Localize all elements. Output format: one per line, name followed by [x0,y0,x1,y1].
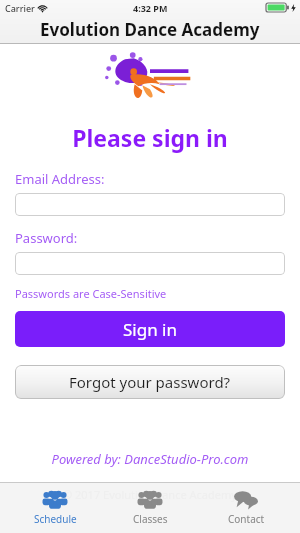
staticText: Sign in [123,318,177,341]
button[interactable]: Schedule [14,490,96,526]
staticText: Email Address: [15,170,105,188]
button[interactable] [15,193,285,216]
button[interactable] [15,252,285,275]
staticText: Passwords are Case-Sensitive [15,286,167,301]
staticText: Evolution Dance Academy [40,18,260,41]
staticText: Contact [228,512,265,526]
staticText: Password: [15,229,78,247]
staticText: 4:32 PM [133,2,168,14]
staticText: Forgot your password? [69,372,231,392]
staticText: © 2017 Evolution Dance Academy [63,487,237,502]
button[interactable]: Classes [109,490,191,526]
staticText: Powered by: DanceStudio-Pro.com [0,450,300,468]
staticText: Classes [133,512,168,526]
staticText: Carrier [5,2,35,14]
button[interactable]: Contact [205,490,287,526]
button[interactable]: Sign in [15,311,285,347]
staticText: Please sign in [0,122,300,153]
button[interactable]: Forgot your password? [15,365,285,399]
staticText: Schedule [34,512,77,526]
